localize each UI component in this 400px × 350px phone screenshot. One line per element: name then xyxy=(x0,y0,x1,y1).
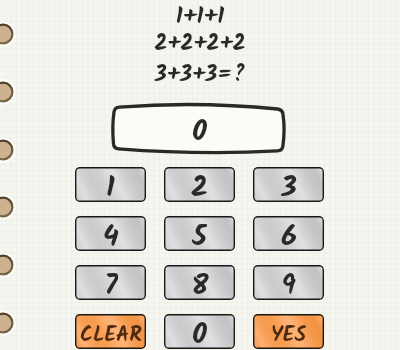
button[interactable]: 1 xyxy=(75,167,146,202)
button[interactable]: 8 xyxy=(164,265,235,300)
button[interactable]: 7 xyxy=(75,265,146,300)
staticText: 9 xyxy=(281,265,296,298)
staticText: 4 xyxy=(103,216,119,249)
staticText: 7 xyxy=(104,265,118,298)
button[interactable]: 9 xyxy=(253,265,324,300)
button[interactable]: 5 xyxy=(164,216,235,251)
staticText: CLEAR xyxy=(80,319,142,349)
staticText: 1+1+1 xyxy=(0,0,400,36)
button[interactable]: CLEAR xyxy=(75,314,146,349)
button[interactable]: 4 xyxy=(75,216,146,251)
staticText: 3 xyxy=(281,167,297,200)
staticText: YES xyxy=(271,319,306,349)
staticText: 0 xyxy=(192,109,207,155)
staticText: 3+3+3=? xyxy=(0,58,400,93)
button[interactable]: 6 xyxy=(253,216,324,251)
button[interactable]: 0 xyxy=(164,314,235,349)
staticText: 5 xyxy=(192,216,207,249)
staticText: 6 xyxy=(281,216,297,249)
button[interactable]: YES xyxy=(253,314,324,349)
button[interactable]: 2 xyxy=(164,167,235,202)
staticText: 8 xyxy=(191,265,209,298)
staticText: 2+2+2+2 xyxy=(0,27,400,62)
staticText: 0 xyxy=(192,314,207,347)
staticText: 2 xyxy=(191,167,208,200)
staticText: 1 xyxy=(106,167,115,200)
button[interactable]: 3 xyxy=(253,167,324,202)
